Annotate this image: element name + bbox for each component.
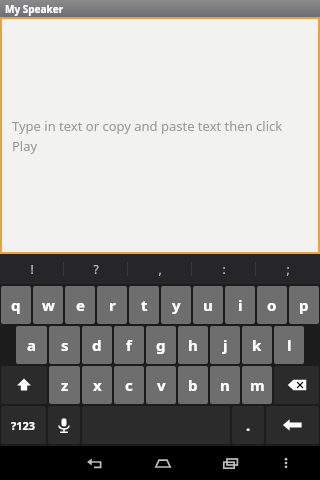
- button[interactable]: y: [161, 286, 191, 324]
- button[interactable]: m: [242, 366, 272, 404]
- button[interactable]: z: [49, 366, 80, 404]
- staticText: u: [203, 295, 213, 315]
- button[interactable]: Enter: [266, 406, 319, 444]
- button[interactable]: v: [146, 366, 176, 404]
- button[interactable]: g: [146, 326, 176, 364]
- staticText: q: [11, 295, 21, 315]
- staticText: b: [188, 375, 198, 395]
- button[interactable]: c: [114, 366, 144, 404]
- button[interactable]: ?123: [1, 406, 46, 444]
- staticText: t: [141, 295, 148, 315]
- staticText: d: [92, 335, 102, 355]
- staticText: j: [223, 335, 228, 355]
- button[interactable]: ,: [128, 254, 192, 284]
- button[interactable]: Menu: [265, 446, 306, 480]
- staticText: r: [109, 295, 116, 315]
- button[interactable]: q: [1, 286, 31, 324]
- button[interactable]: a: [16, 326, 47, 364]
- button[interactable]: x: [82, 366, 112, 404]
- staticText: g: [156, 335, 166, 355]
- button[interactable]: o: [257, 286, 287, 324]
- staticText: .: [246, 415, 251, 435]
- staticText: ?123: [11, 418, 36, 433]
- staticText: Type in text or copy and paste text then…: [12, 117, 288, 155]
- staticText: c: [125, 375, 133, 395]
- staticText: ;: [286, 261, 290, 277]
- staticText: ,: [158, 261, 162, 277]
- button[interactable]: !: [0, 254, 64, 284]
- staticText: w: [42, 295, 55, 315]
- button[interactable]: h: [178, 326, 208, 364]
- button[interactable]: Back: [61, 446, 129, 480]
- button[interactable]: k: [242, 326, 272, 364]
- button[interactable]: :: [192, 254, 256, 284]
- staticText: s: [61, 335, 69, 355]
- staticText: :: [222, 261, 226, 277]
- button[interactable]: ?: [64, 254, 128, 284]
- button[interactable]: w: [33, 286, 63, 324]
- staticText: z: [61, 375, 69, 395]
- button[interactable]: Recents: [197, 446, 265, 480]
- button[interactable]: e: [65, 286, 95, 324]
- staticText: f: [126, 335, 132, 355]
- button[interactable]: t: [129, 286, 159, 324]
- staticText: y: [172, 295, 181, 315]
- staticText: a: [27, 335, 36, 355]
- staticText: m: [250, 375, 265, 395]
- button[interactable]: j: [210, 326, 240, 364]
- button[interactable]: Voice input: [48, 406, 80, 444]
- button[interactable]: Type in text or copy and paste text then…: [2, 19, 318, 252]
- button[interactable]: n: [210, 366, 240, 404]
- button[interactable]: u: [193, 286, 223, 324]
- button[interactable]: f: [114, 326, 144, 364]
- button[interactable]: My Speaker: [0, 0, 320, 17]
- staticText: p: [299, 295, 309, 315]
- staticText: e: [76, 295, 85, 315]
- staticText: v: [157, 375, 166, 395]
- button[interactable]: p: [289, 286, 319, 324]
- button[interactable]: r: [97, 286, 127, 324]
- staticText: o: [267, 295, 277, 315]
- button[interactable]: s: [49, 326, 80, 364]
- staticText: ?: [93, 261, 99, 277]
- button[interactable]: l: [274, 326, 304, 364]
- staticText: n: [220, 375, 230, 395]
- staticText: h: [188, 335, 198, 355]
- button[interactable]: Shift: [1, 366, 47, 404]
- staticText: My Speaker: [5, 2, 64, 16]
- staticText: l: [287, 335, 292, 355]
- staticText: x: [93, 375, 102, 395]
- staticText: k: [252, 335, 262, 355]
- staticText: i: [238, 295, 243, 315]
- button[interactable]: ;: [256, 254, 320, 284]
- button[interactable]: d: [82, 326, 112, 364]
- button[interactable]: Backspace: [274, 366, 319, 404]
- button[interactable]: b: [178, 366, 208, 404]
- button[interactable]: Home: [129, 446, 197, 480]
- button[interactable]: i: [225, 286, 255, 324]
- button[interactable]: .: [232, 406, 264, 444]
- staticText: !: [30, 261, 34, 277]
